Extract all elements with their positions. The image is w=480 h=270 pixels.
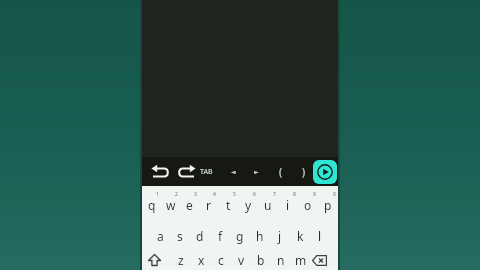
button[interactable]: d [190, 222, 210, 250]
button[interactable] [311, 246, 338, 270]
staticText: c [218, 252, 224, 268]
button[interactable] [313, 160, 337, 184]
staticText: u [264, 197, 272, 213]
staticText: d [196, 228, 204, 244]
button[interactable]: ) [292, 157, 316, 186]
button[interactable]: 2 [161, 191, 180, 219]
button[interactable]: 9 [298, 191, 318, 219]
staticText: 8 [293, 191, 296, 198]
staticText: b [257, 252, 265, 268]
staticText: x [198, 252, 205, 268]
staticText: TAB [200, 167, 213, 177]
staticText: ) [302, 165, 306, 179]
staticText: g [236, 228, 244, 244]
button[interactable]: a [150, 222, 170, 250]
staticText: o [304, 197, 312, 213]
staticText: 0 [333, 191, 336, 198]
button[interactable]: k [290, 222, 310, 250]
staticText: e [186, 197, 193, 213]
button[interactable]: z [170, 246, 191, 270]
staticText: f [218, 228, 223, 244]
button[interactable]: g [230, 222, 250, 250]
button[interactable]: 4 [199, 191, 218, 219]
staticText: z [178, 252, 184, 268]
button[interactable]: s [170, 222, 190, 250]
button[interactable]: v [231, 246, 251, 270]
staticText: 7 [273, 191, 276, 198]
button[interactable]: ► [244, 157, 268, 186]
button[interactable]: x [191, 246, 211, 270]
button[interactable] [151, 164, 170, 179]
staticText: j [278, 228, 282, 244]
button[interactable]: 1 [142, 191, 161, 219]
staticText: 5 [233, 191, 236, 198]
staticText: r [206, 197, 211, 213]
button[interactable]: ( [269, 157, 293, 186]
button[interactable]: h [250, 222, 270, 250]
button[interactable]: 3 [180, 191, 199, 219]
button[interactable]: c [211, 246, 231, 270]
button[interactable]: 0 [318, 191, 338, 219]
button[interactable]: ◄ [221, 157, 245, 186]
staticText: 1 [156, 191, 159, 198]
button[interactable]: 8 [278, 191, 298, 219]
staticText: i [286, 197, 290, 213]
staticText: s [177, 228, 183, 244]
staticText: a [157, 228, 164, 244]
staticText: 2 [175, 191, 178, 198]
staticText: 3 [194, 191, 197, 198]
staticText: 6 [253, 191, 256, 198]
button[interactable]: m [291, 246, 311, 270]
staticText: v [238, 252, 245, 268]
staticText: l [318, 228, 322, 244]
staticText: ( [279, 165, 283, 179]
staticText: p [324, 197, 332, 213]
button[interactable]: j [270, 222, 290, 250]
button[interactable] [177, 164, 196, 179]
button[interactable]: l [310, 222, 330, 250]
staticText: h [256, 228, 264, 244]
button[interactable]: b [251, 246, 271, 270]
staticText: y [245, 197, 252, 213]
staticText: k [297, 228, 304, 244]
staticText: 4 [213, 191, 216, 198]
staticText: t [226, 197, 231, 213]
staticText: 9 [313, 191, 316, 198]
staticText: m [295, 252, 307, 268]
staticText: ◄ [231, 168, 236, 175]
button[interactable]: 5 [218, 191, 238, 219]
staticText: n [277, 252, 285, 268]
button[interactable]: 6 [238, 191, 258, 219]
button[interactable]: n [271, 246, 291, 270]
button[interactable] [142, 246, 170, 270]
staticText: w [166, 197, 176, 213]
staticText: ► [254, 168, 259, 175]
button[interactable]: f [210, 222, 230, 250]
button[interactable]: 7 [258, 191, 278, 219]
staticText: q [148, 197, 156, 213]
button[interactable]: TAB [194, 157, 218, 186]
